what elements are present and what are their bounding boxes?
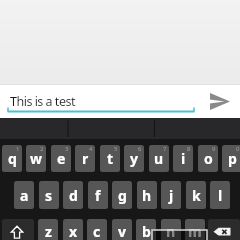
button[interactable]: g bbox=[112, 181, 132, 209]
button[interactable]: o bbox=[198, 145, 218, 172]
staticText: l bbox=[218, 186, 223, 205]
button[interactable] bbox=[208, 219, 240, 240]
button[interactable]: k bbox=[186, 181, 206, 209]
staticText: q bbox=[8, 149, 17, 168]
staticText: k bbox=[192, 186, 201, 205]
staticText: i bbox=[181, 149, 186, 168]
button[interactable]: r bbox=[75, 145, 95, 172]
staticText: a bbox=[20, 186, 29, 205]
button[interactable]: p bbox=[222, 145, 240, 172]
button[interactable]: u bbox=[149, 145, 169, 172]
button[interactable]: l bbox=[210, 181, 230, 209]
button[interactable]: s bbox=[39, 181, 59, 209]
staticText: h bbox=[142, 186, 152, 205]
staticText: 0 bbox=[236, 145, 240, 153]
staticText: w bbox=[30, 149, 42, 168]
button[interactable]: a bbox=[14, 181, 34, 209]
button[interactable]: e bbox=[51, 145, 71, 172]
staticText: 1 bbox=[16, 145, 20, 153]
staticText: This is a test bbox=[10, 93, 75, 110]
staticText: s bbox=[45, 186, 53, 205]
staticText: c bbox=[93, 222, 101, 240]
button[interactable]: d bbox=[63, 181, 83, 209]
staticText: z bbox=[45, 222, 52, 240]
staticText: f bbox=[95, 186, 101, 205]
staticText: y bbox=[130, 149, 138, 168]
staticText: 2 bbox=[40, 145, 44, 153]
button[interactable]: x bbox=[63, 219, 83, 240]
button[interactable]: c bbox=[87, 219, 107, 240]
staticText: r bbox=[82, 149, 89, 168]
button[interactable]: j bbox=[161, 181, 181, 209]
staticText: u bbox=[154, 149, 164, 168]
staticText: o bbox=[204, 149, 213, 168]
staticText: p bbox=[228, 149, 237, 168]
staticText: n bbox=[166, 222, 176, 240]
button[interactable]: t bbox=[100, 145, 120, 172]
staticText: g bbox=[118, 186, 127, 205]
button[interactable]: f bbox=[88, 181, 108, 209]
staticText: 8 bbox=[187, 145, 191, 153]
button[interactable]: z bbox=[38, 219, 58, 240]
staticText: 3 bbox=[65, 145, 69, 153]
button[interactable]: v bbox=[112, 219, 132, 240]
button[interactable]: b bbox=[136, 219, 156, 240]
staticText: 6 bbox=[138, 145, 142, 153]
button[interactable]: y bbox=[124, 145, 144, 172]
staticText: j bbox=[169, 186, 174, 205]
button[interactable]: n bbox=[161, 219, 181, 240]
staticText: e bbox=[57, 149, 66, 168]
staticText: d bbox=[69, 186, 78, 205]
button[interactable]: h bbox=[137, 181, 157, 209]
button[interactable] bbox=[0, 85, 240, 118]
staticText: b bbox=[142, 222, 151, 240]
button[interactable] bbox=[2, 219, 34, 240]
button[interactable] bbox=[200, 85, 240, 118]
button[interactable]: i bbox=[173, 145, 193, 172]
staticText: t bbox=[107, 149, 114, 168]
staticText: 7 bbox=[163, 145, 167, 153]
button[interactable]: q bbox=[2, 145, 22, 172]
staticText: 4 bbox=[89, 145, 93, 153]
button[interactable]: m bbox=[185, 219, 205, 240]
staticText: v bbox=[118, 222, 126, 240]
staticText: m bbox=[188, 222, 202, 240]
staticText: x bbox=[69, 222, 78, 240]
staticText: 9 bbox=[212, 145, 216, 153]
button[interactable]: w bbox=[26, 145, 46, 172]
staticText: 5 bbox=[114, 145, 118, 153]
